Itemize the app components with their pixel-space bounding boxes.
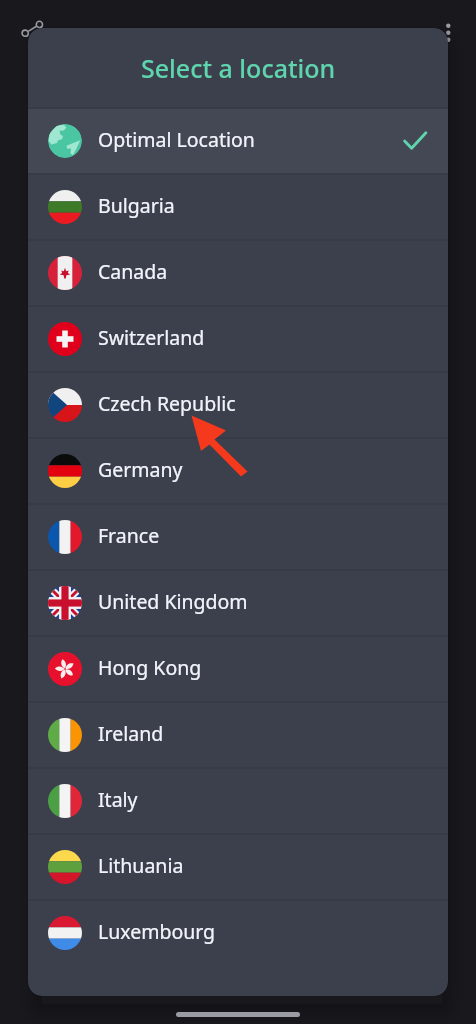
staticText: Canada (98, 258, 168, 285)
button[interactable]: Bulgaria (28, 175, 448, 239)
staticText: Bulgaria (98, 192, 175, 219)
staticText: Luxembourg (98, 918, 216, 945)
button[interactable]: Optimal Location (28, 109, 448, 173)
staticText: France (98, 522, 160, 549)
staticText: Select a location (141, 51, 336, 85)
staticText: United Kingdom (98, 588, 248, 615)
button[interactable]: Italy (28, 769, 448, 833)
staticText: Ireland (98, 720, 164, 747)
button[interactable]: Germany (28, 439, 448, 503)
button[interactable]: Ireland (28, 703, 448, 767)
button[interactable]: Luxembourg (28, 901, 448, 965)
staticText: Hong Kong (98, 654, 202, 681)
staticText: Italy (98, 786, 138, 813)
staticText: Lithuania (98, 852, 184, 879)
staticText: Optimal Location (98, 126, 255, 153)
button[interactable]: Lithuania (28, 835, 448, 899)
staticText: Czech Republic (98, 390, 236, 417)
button[interactable]: United Kingdom (28, 571, 448, 635)
button[interactable]: Canada (28, 241, 448, 305)
button[interactable]: Czech Republic (28, 373, 448, 437)
button[interactable]: Hong Kong (28, 637, 448, 701)
button[interactable]: Switzerland (28, 307, 448, 371)
button[interactable]: France (28, 505, 448, 569)
staticText: Germany (98, 456, 183, 483)
staticText: Switzerland (98, 324, 205, 351)
